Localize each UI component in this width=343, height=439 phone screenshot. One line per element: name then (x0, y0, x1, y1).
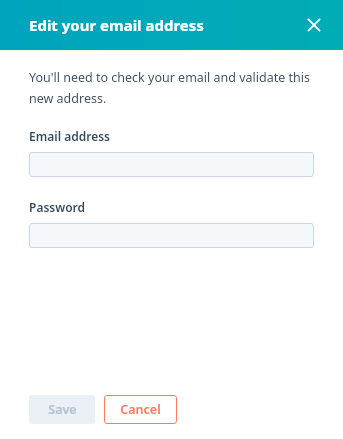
staticText: You'll need to check your email and vali… (29, 69, 314, 107)
staticText: Save (48, 401, 77, 418)
staticText: Password (29, 199, 86, 215)
staticText: Cancel (120, 401, 161, 418)
button[interactable]: Text input field (29, 223, 314, 248)
button[interactable]: Close (298, 9, 330, 41)
staticText: Edit your email address (29, 15, 204, 35)
button[interactable]: Save (29, 395, 95, 424)
button[interactable]: Cancel (104, 395, 177, 424)
staticText: Email address (29, 128, 111, 144)
button[interactable]: Text input field (29, 152, 314, 177)
